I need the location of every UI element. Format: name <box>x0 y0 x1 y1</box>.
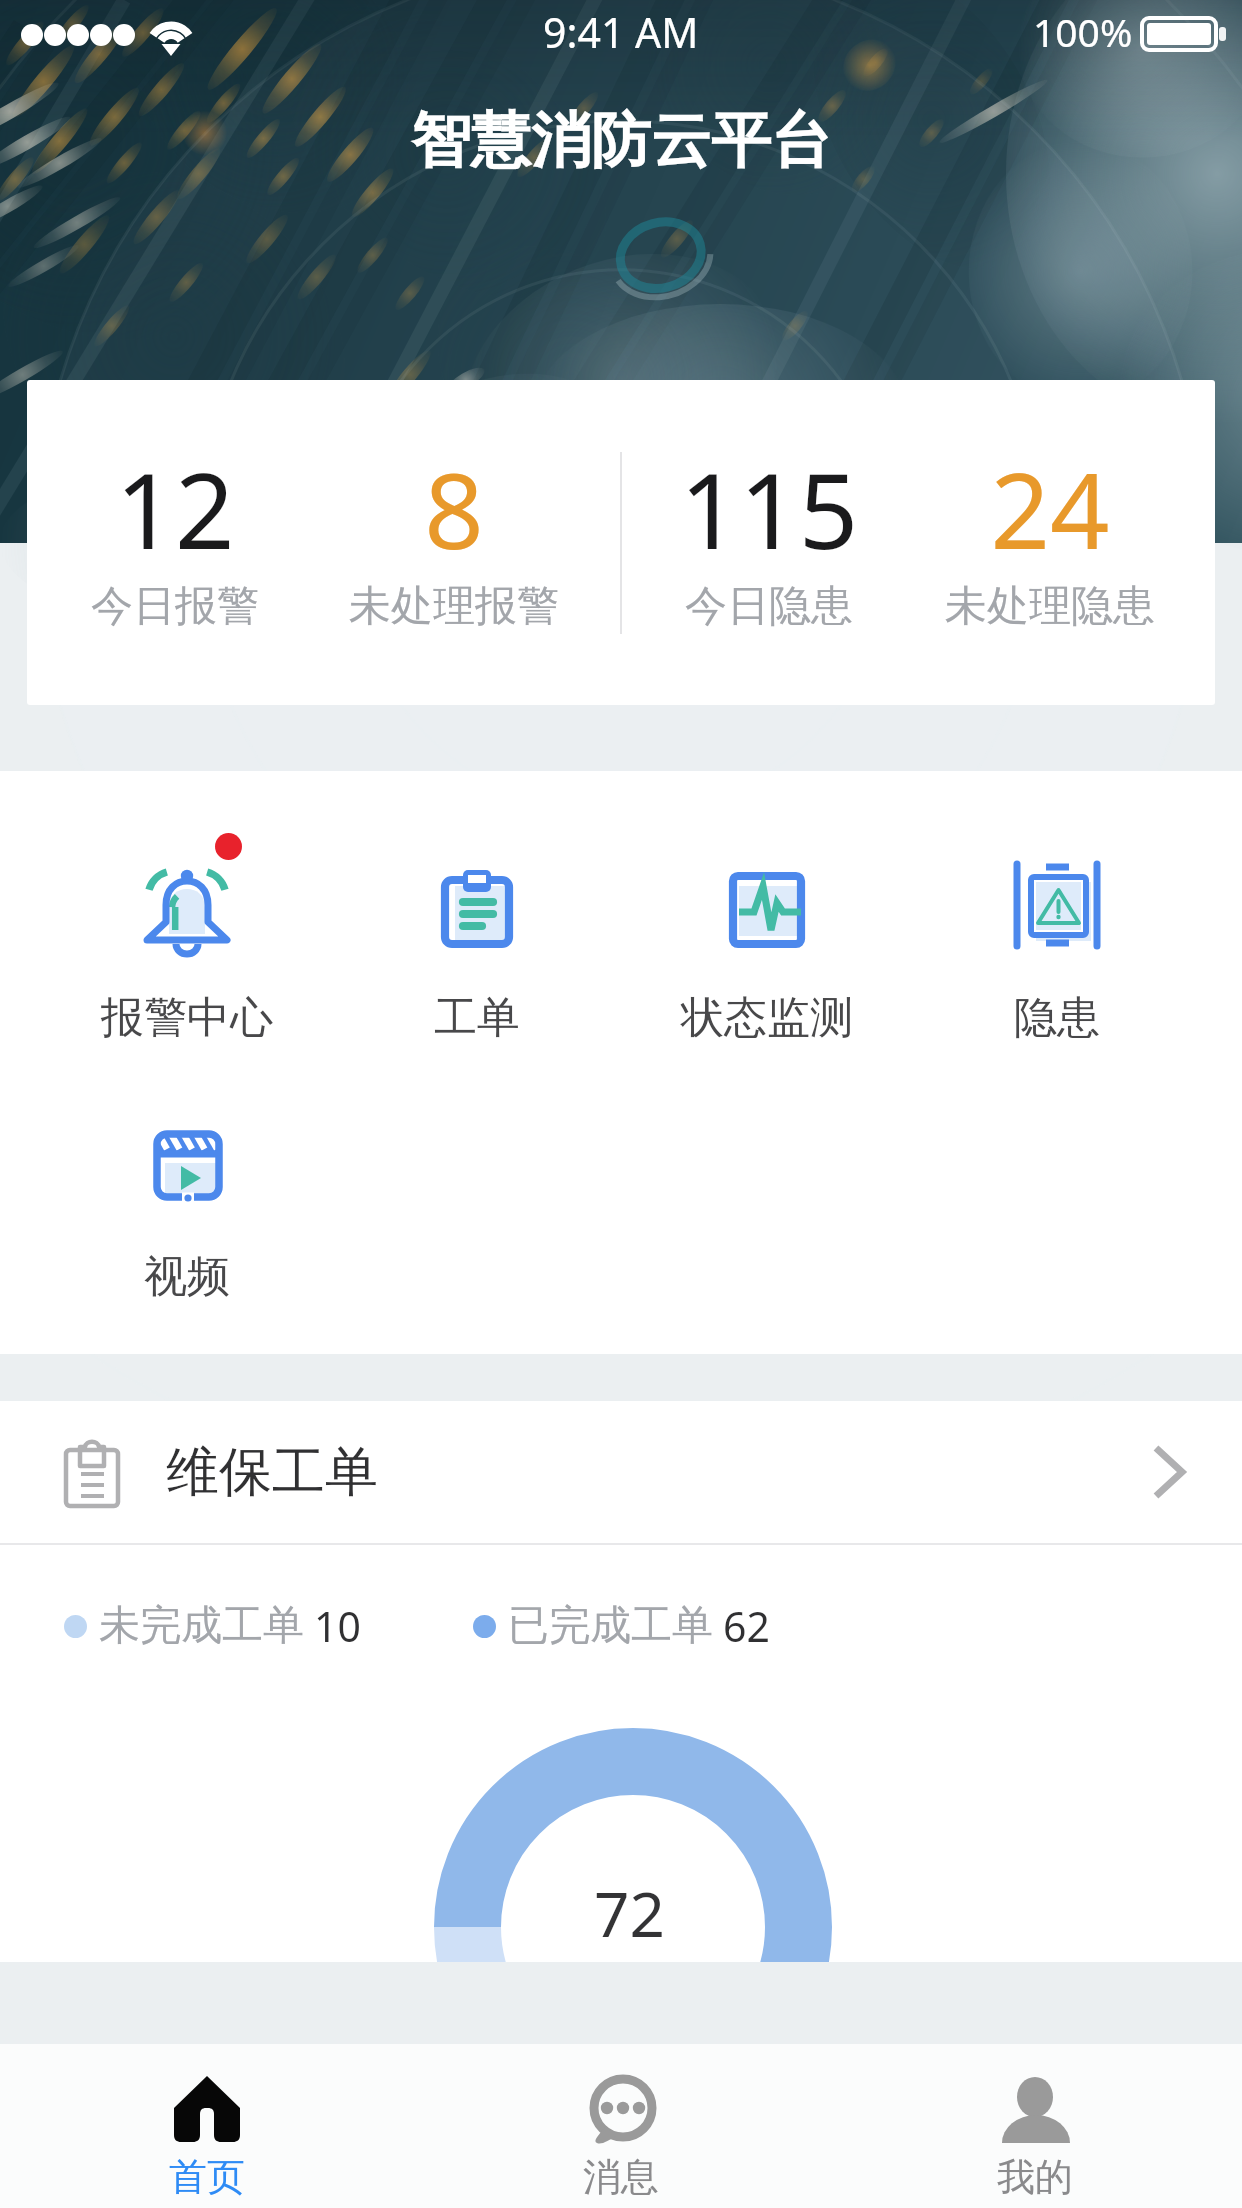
button[interactable]: 维保工单 <box>0 1401 1242 1543</box>
staticText: 状态监测 <box>681 991 853 1045</box>
staticText: 24 <box>900 438 1200 580</box>
staticText: 100% <box>1033 5 1133 58</box>
button[interactable]: 报警中心 <box>42 850 332 1045</box>
staticText: 今日报警 <box>27 580 325 633</box>
button[interactable]: 首页 <box>0 2044 414 2208</box>
staticText: 维保工单 <box>166 1439 378 1506</box>
button[interactable]: 消息 <box>414 2044 828 2208</box>
button[interactable]: 24 <box>900 380 1200 705</box>
staticText: 未处理隐患 <box>900 580 1200 633</box>
button[interactable]: 状态监测 <box>622 850 912 1045</box>
staticText: 未完成工单 <box>99 1600 304 1652</box>
staticText: 今日隐患 <box>619 580 919 633</box>
button[interactable]: 视频 <box>42 1109 332 1304</box>
staticText: 已完成工单 <box>508 1600 713 1652</box>
button[interactable]: 8 <box>304 380 604 705</box>
staticText: 我的 <box>997 2153 1073 2201</box>
staticText: 9:41 AM <box>543 4 699 60</box>
staticText: 智慧消防云平台 <box>411 103 831 179</box>
staticText: 72 <box>594 1871 665 1955</box>
button[interactable]: 我的 <box>828 2044 1242 2208</box>
button[interactable]: 115 <box>619 380 919 705</box>
staticText: 未处理报警 <box>304 580 604 633</box>
staticText: 62 <box>723 1598 770 1654</box>
staticText: 首页 <box>169 2153 245 2201</box>
staticText: 隐患 <box>1014 991 1100 1045</box>
staticText: 10 <box>314 1598 361 1654</box>
button[interactable]: 隐患 <box>912 850 1202 1045</box>
staticText: 8 <box>304 438 604 580</box>
staticText: 工单 <box>434 991 520 1045</box>
staticText: 115 <box>619 438 919 580</box>
staticText: 报警中心 <box>101 991 273 1045</box>
staticText: 消息 <box>583 2153 659 2201</box>
staticText: 12 <box>27 438 325 580</box>
button[interactable]: 工单 <box>332 850 622 1045</box>
button[interactable]: 12 <box>27 380 325 705</box>
staticText: 视频 <box>144 1250 230 1304</box>
